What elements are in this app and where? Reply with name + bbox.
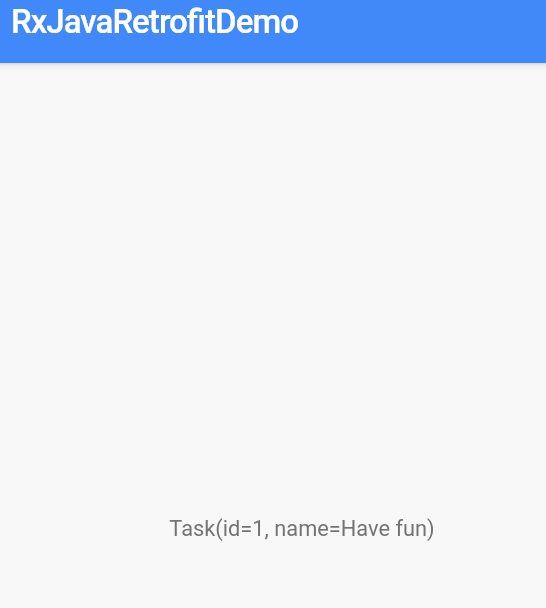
button[interactable]: Task(id=1, name=Have fun) [169,516,435,542]
staticText: RxJavaRetrofitDemo [11,2,299,41]
